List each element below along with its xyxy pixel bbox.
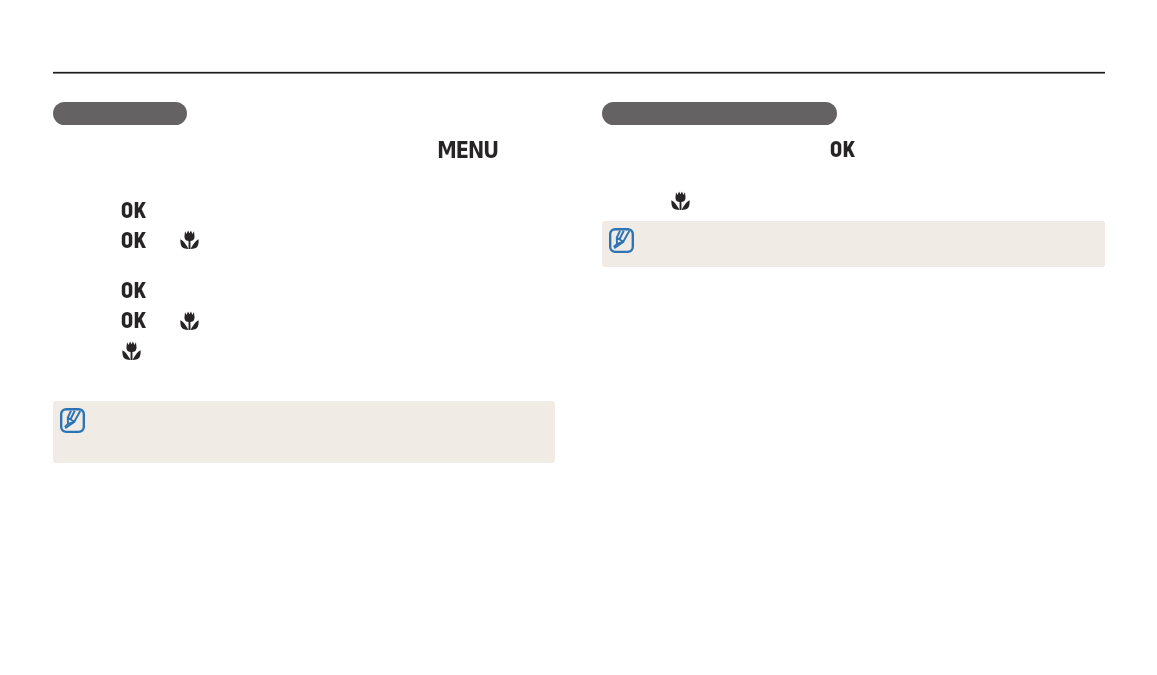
staticText: OK (830, 135, 856, 161)
other: Macro mode (180, 230, 199, 249)
other: Macro mode (122, 341, 141, 360)
other: Note (609, 228, 634, 253)
staticText: MENU (437, 137, 498, 163)
button[interactable]: OK (121, 196, 147, 222)
other: Note (60, 408, 85, 433)
button[interactable]: OK (830, 135, 856, 161)
button[interactable]: OK (121, 306, 147, 332)
button[interactable]: Section heading (602, 102, 837, 125)
other: Macro mode (180, 311, 199, 330)
button[interactable]: OK (121, 276, 147, 302)
other: Macro mode (671, 191, 690, 210)
button[interactable]: Note (53, 401, 555, 463)
staticText: OK (121, 276, 147, 302)
button[interactable]: Note (602, 221, 1105, 267)
staticText: OK (121, 306, 147, 332)
staticText: OK (121, 196, 147, 222)
button[interactable]: Section heading (53, 102, 187, 125)
staticText: OK (121, 226, 147, 252)
button[interactable]: MENU (437, 137, 498, 163)
button[interactable]: OK (121, 226, 147, 252)
